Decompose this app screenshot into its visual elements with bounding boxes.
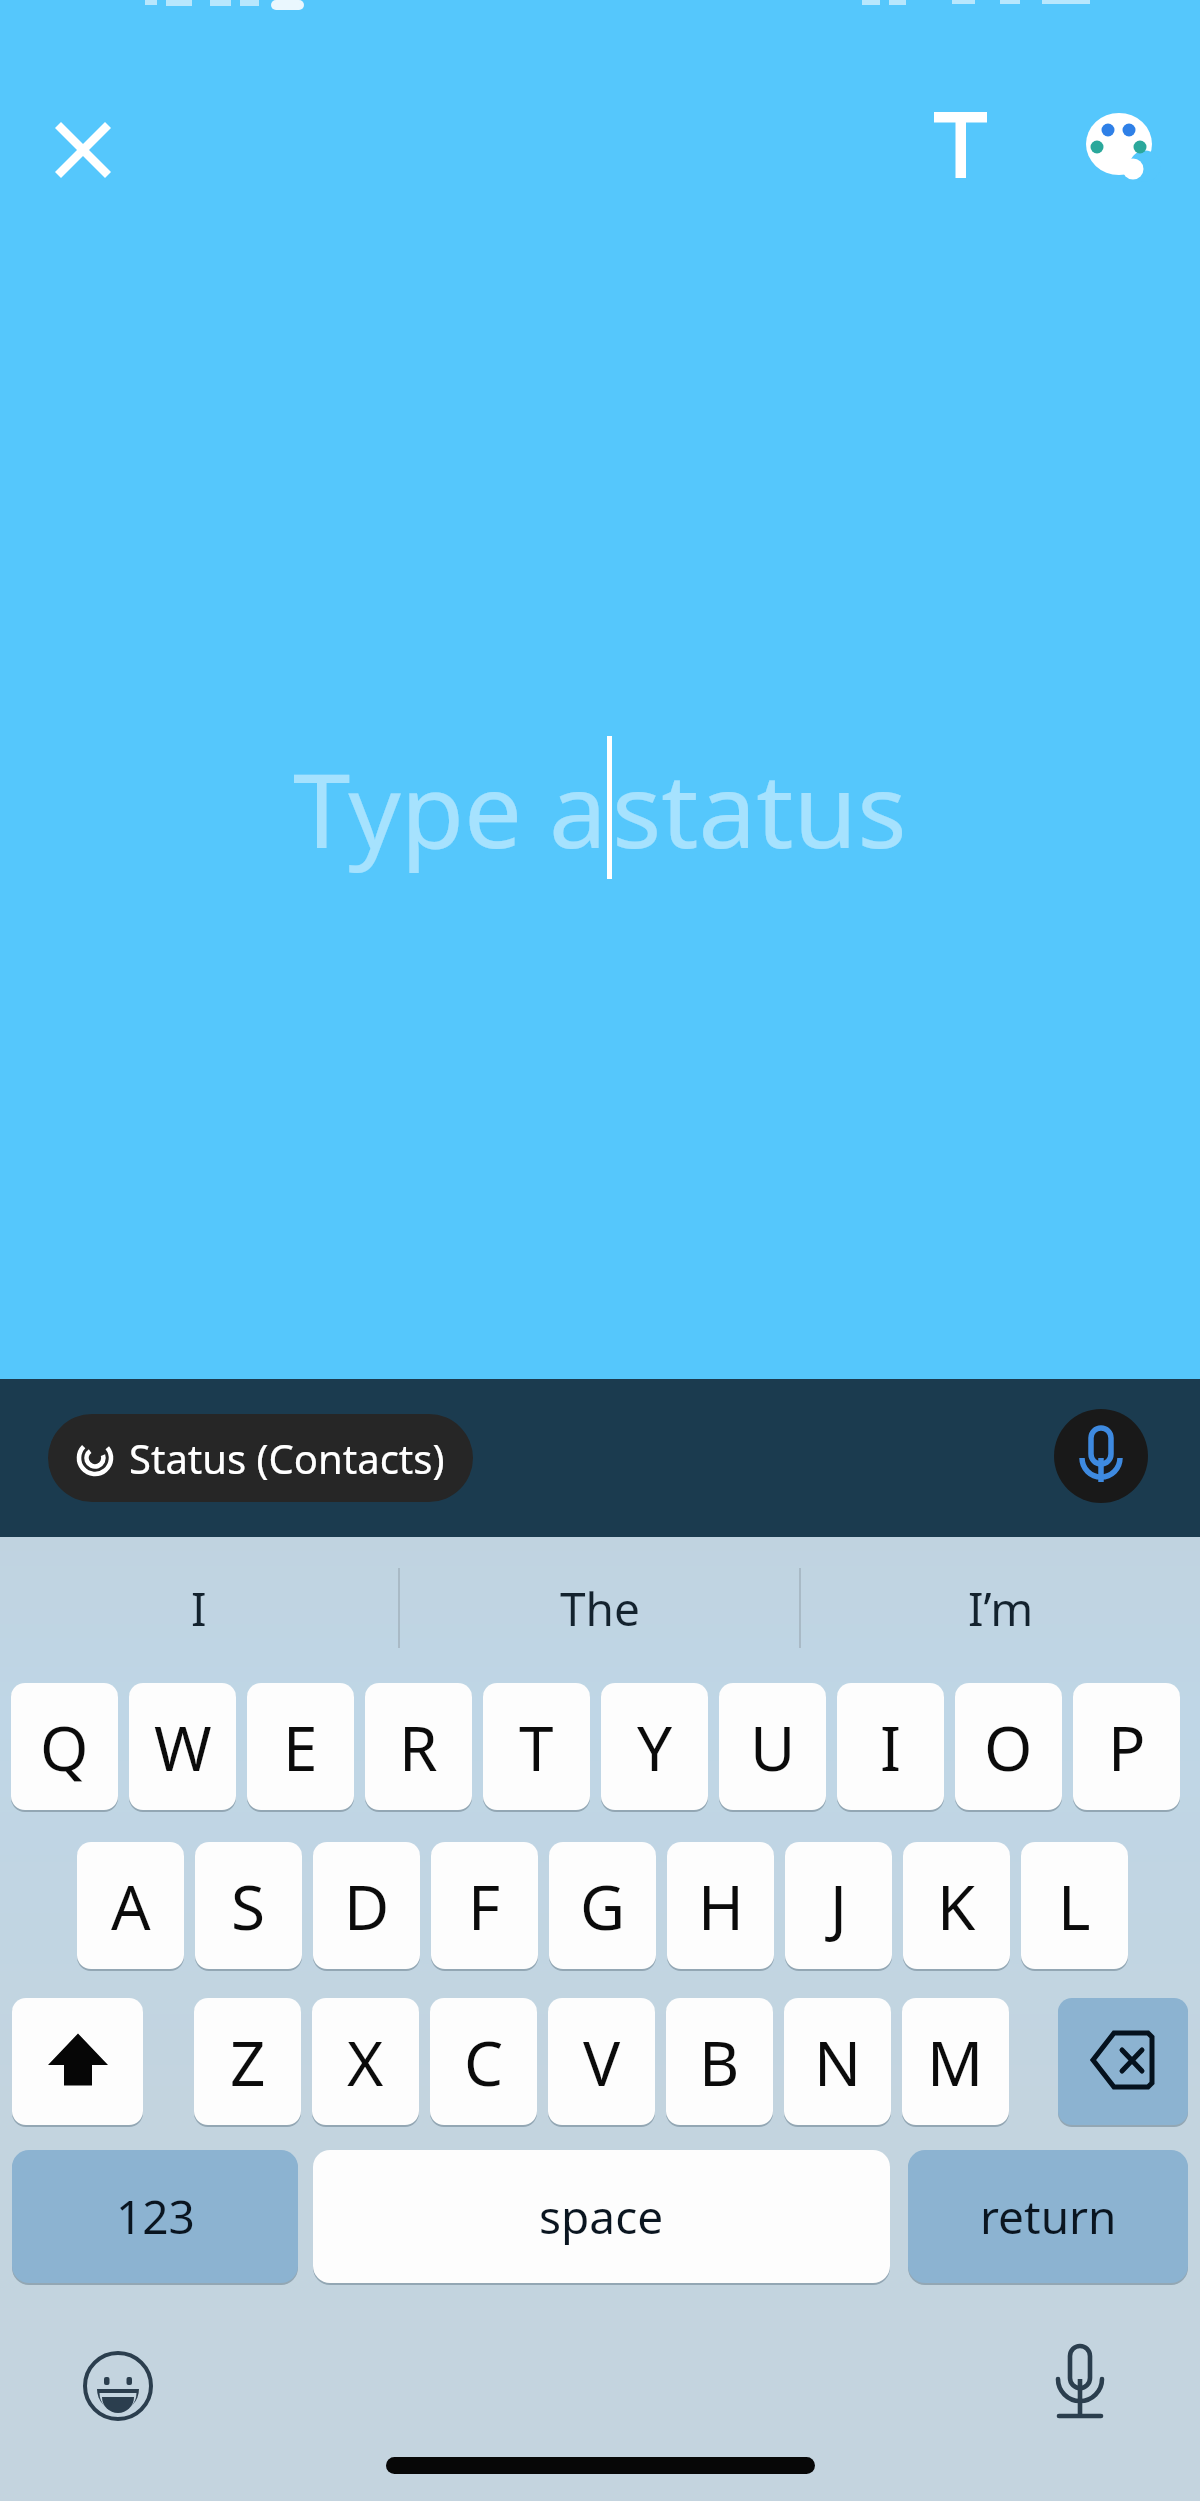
button[interactable]: V (548, 1998, 655, 2125)
staticText: L (1058, 1864, 1091, 1948)
staticText: H (698, 1864, 744, 1948)
staticText: O (984, 1705, 1033, 1789)
button[interactable]: Emoji (83, 2351, 153, 2421)
staticText: A (111, 1864, 151, 1948)
button[interactable]: P (1073, 1683, 1180, 1810)
button[interactable]: B (666, 1998, 773, 2125)
staticText: P (1108, 1705, 1146, 1789)
staticText: I (880, 1705, 902, 1789)
button[interactable]: Voice typing (1040, 2343, 1120, 2423)
staticText: W (154, 1705, 212, 1789)
button[interactable]: W (129, 1683, 236, 1810)
button[interactable]: A (77, 1842, 184, 1969)
button[interactable]: Y (601, 1683, 708, 1810)
staticText: status (612, 738, 907, 878)
button[interactable]: K (903, 1842, 1010, 1969)
button[interactable]: T (483, 1683, 590, 1810)
button[interactable]: U (719, 1683, 826, 1810)
staticText: return (980, 2185, 1117, 2248)
staticText: M (927, 2020, 984, 2104)
button[interactable]: Close (33, 100, 133, 200)
button[interactable]: L (1021, 1842, 1128, 1969)
button[interactable]: 123 (12, 2150, 298, 2283)
button[interactable]: return (908, 2150, 1188, 2283)
staticText: D (344, 1864, 390, 1948)
staticText: F (468, 1864, 501, 1948)
staticText: Y (637, 1705, 673, 1789)
button[interactable]: M (902, 1998, 1009, 2125)
staticText: Q (40, 1705, 89, 1789)
button[interactable]: Backspace (1058, 1998, 1188, 2125)
staticText: T (519, 1705, 554, 1789)
button[interactable]: X (312, 1998, 419, 2125)
staticText: Z (230, 2020, 266, 2104)
button[interactable]: space (313, 2150, 890, 2283)
staticText: The (560, 1577, 640, 1640)
staticText: U (750, 1705, 796, 1789)
button[interactable]: H (667, 1842, 774, 1969)
staticText: C (464, 2020, 504, 2104)
button[interactable]: I’m (801, 1549, 1200, 1667)
button[interactable]: R (365, 1683, 472, 1810)
button[interactable]: I (837, 1683, 944, 1810)
staticText: K (937, 1864, 976, 1948)
button[interactable]: Status (Contacts) (48, 1414, 473, 1502)
button[interactable]: Text style (911, 95, 1011, 195)
button[interactable]: Shift (12, 1998, 143, 2125)
button[interactable]: Q (11, 1683, 118, 1810)
button[interactable]: F (431, 1842, 538, 1969)
staticText: G (580, 1864, 626, 1948)
button[interactable]: C (430, 1998, 537, 2125)
staticText: X (347, 2020, 384, 2104)
button[interactable]: N (784, 1998, 891, 2125)
staticText: B (699, 2020, 740, 2104)
button[interactable]: J (785, 1842, 892, 1969)
staticText: I’m (968, 1577, 1034, 1640)
button[interactable]: D (313, 1842, 420, 1969)
staticText: E (283, 1705, 318, 1789)
button[interactable]: E (247, 1683, 354, 1810)
staticText: Type a (293, 738, 607, 878)
button[interactable]: S (195, 1842, 302, 1969)
staticText: S (231, 1864, 266, 1948)
button[interactable]: O (955, 1683, 1062, 1810)
button[interactable]: G (549, 1842, 656, 1969)
staticText: Status (Contacts) (129, 1431, 445, 1485)
button[interactable]: The (400, 1549, 799, 1667)
button[interactable]: I (0, 1549, 398, 1667)
staticText: J (830, 1864, 847, 1948)
staticText: I (191, 1577, 207, 1640)
button[interactable]: Z (194, 1998, 301, 2125)
staticText: R (399, 1705, 438, 1789)
staticText: N (814, 2020, 862, 2104)
staticText: V (583, 2020, 621, 2104)
staticText: space (539, 2185, 664, 2248)
button[interactable]: Colour palette (1069, 95, 1169, 195)
staticText: 123 (116, 2185, 195, 2248)
button[interactable]: Voice note (1054, 1409, 1148, 1503)
